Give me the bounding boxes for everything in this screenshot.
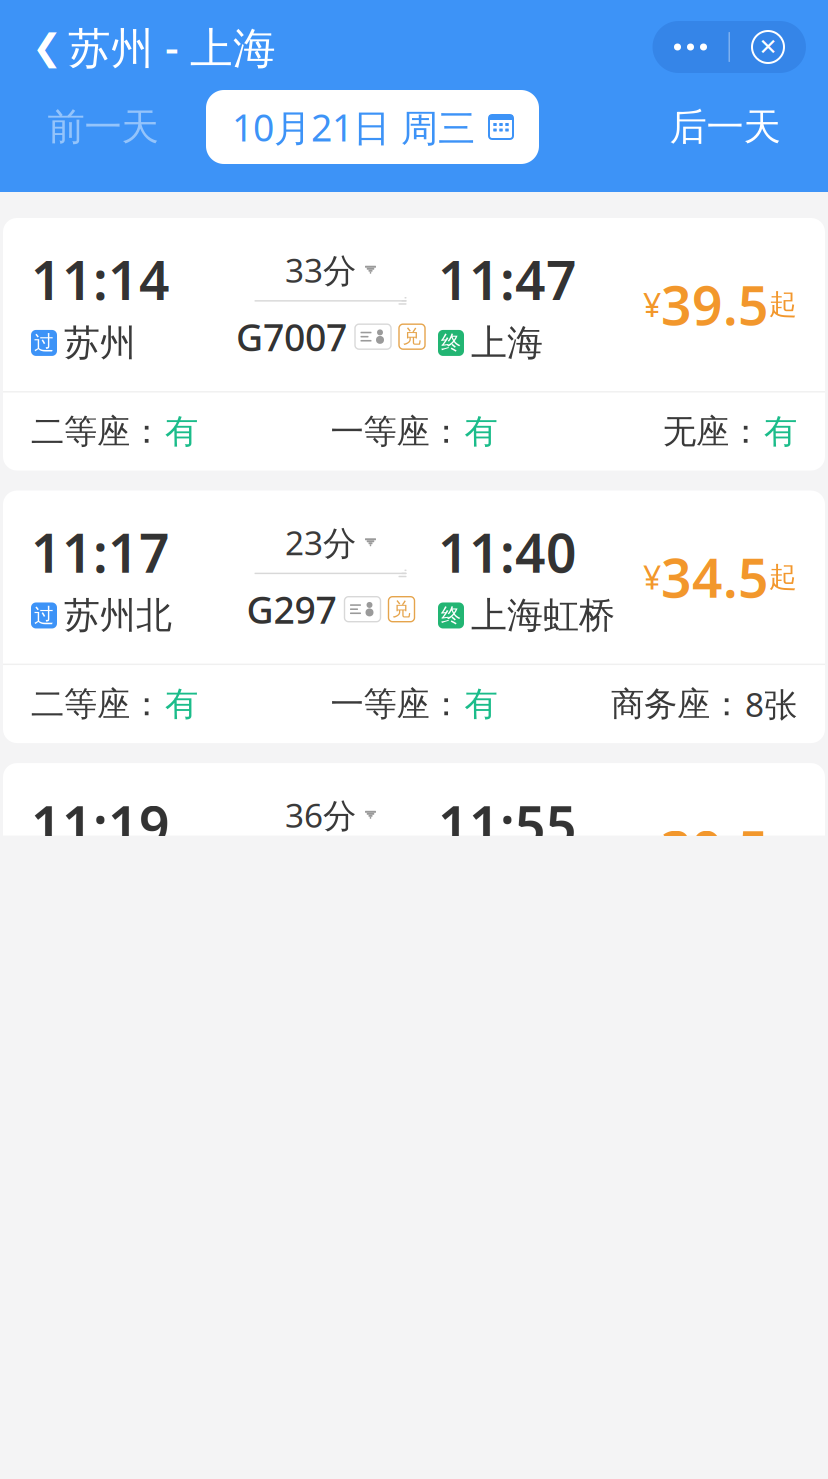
staticText: 11:40	[438, 516, 577, 587]
button[interactable]: 11:14	[3, 218, 825, 470]
staticText: G7007	[236, 312, 347, 361]
button[interactable]: 后一天	[622, 92, 828, 162]
staticText: ❮	[32, 27, 62, 67]
button[interactable]: 前一天	[0, 92, 206, 162]
staticText: ✕	[758, 34, 777, 60]
staticText: 起	[769, 832, 797, 867]
staticText: 二等座：	[31, 684, 163, 724]
staticText: 终	[441, 331, 461, 355]
staticText: 34.5	[661, 542, 769, 612]
staticText: 有	[165, 684, 198, 724]
staticText: 33分	[285, 248, 356, 292]
staticText: 有	[165, 411, 198, 452]
staticText: 过	[34, 331, 54, 355]
button[interactable]: 11:19	[3, 763, 825, 1016]
staticText: 兑	[392, 598, 411, 621]
staticText: 8张	[745, 682, 797, 726]
staticText: ¥	[643, 283, 661, 326]
button[interactable]: Close	[730, 21, 806, 73]
staticText: 上海	[471, 321, 543, 365]
staticText: 11:47	[438, 244, 577, 315]
staticText: 一等座：	[330, 684, 462, 724]
staticText: 二等座：	[31, 411, 163, 452]
staticText: 有	[464, 411, 497, 452]
staticText: 有	[764, 411, 797, 452]
staticText: 前一天	[47, 104, 158, 150]
staticText: 商务座：	[611, 684, 743, 724]
staticText: 11:17	[31, 516, 170, 587]
staticText: 苏州北	[64, 593, 172, 638]
staticText: 39.5	[661, 269, 769, 340]
staticText: 终	[441, 603, 461, 628]
staticText: 后一天	[669, 104, 780, 150]
button[interactable]: More options	[652, 21, 728, 73]
staticText: 10月21日 周三	[232, 102, 475, 152]
staticText: G297	[246, 584, 336, 634]
staticText: 一等座：	[330, 411, 462, 452]
staticText: 上海虹桥	[471, 593, 615, 638]
staticText: 兑	[402, 325, 421, 348]
staticText: 过	[34, 603, 54, 628]
staticText: 无座：	[663, 411, 762, 452]
staticText: 起	[769, 287, 797, 322]
staticText: 39.5	[661, 814, 769, 885]
staticText: ¥	[643, 828, 661, 871]
staticText: 11:14	[31, 244, 170, 315]
staticText: 有	[464, 684, 497, 724]
staticText: 苏州	[64, 321, 136, 365]
button[interactable]: ❮	[0, 16, 286, 78]
staticText: 11:55	[438, 789, 577, 860]
button[interactable]: 11:17	[3, 490, 825, 743]
staticText: 苏州 - 上海	[68, 19, 276, 75]
staticText: 36分	[285, 793, 356, 837]
staticText: 起	[769, 560, 797, 594]
staticText: 11:19	[31, 789, 170, 860]
button[interactable]: 10月21日 周三	[206, 90, 539, 164]
staticText: ¥	[643, 556, 661, 598]
staticText: 23分	[285, 520, 356, 564]
